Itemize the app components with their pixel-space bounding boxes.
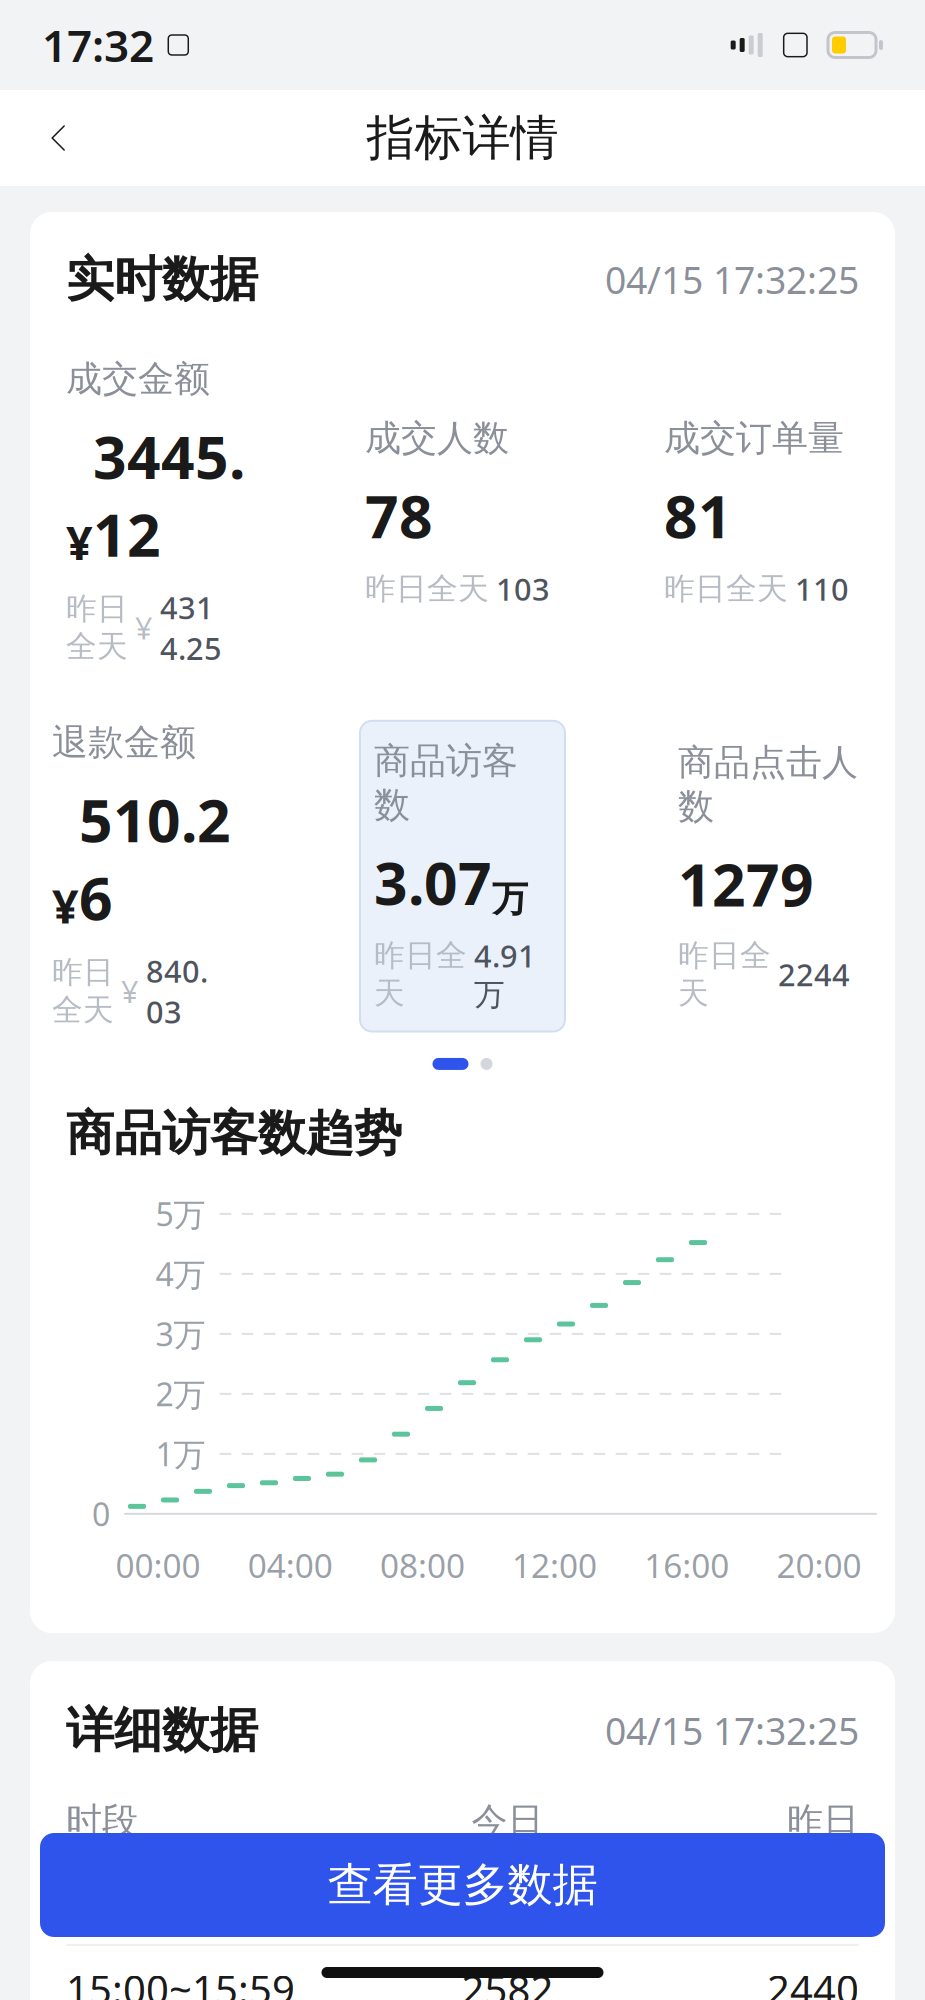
- staticText: 2752: [461, 1874, 553, 1928]
- staticText: 4314.25: [160, 587, 222, 668]
- staticText: 4.91万: [474, 935, 536, 1014]
- staticText: 20:00: [776, 1543, 861, 1587]
- staticText: 0: [92, 1493, 110, 1535]
- staticText: 退款金额: [52, 720, 196, 765]
- staticText: 17:32: [42, 16, 154, 74]
- staticText: 3445.12: [93, 417, 245, 573]
- staticText: 2244: [778, 954, 850, 995]
- staticText: 查看更多数据: [327, 1857, 597, 1913]
- staticText: 2万: [155, 1373, 205, 1415]
- staticText: 110: [795, 568, 849, 609]
- staticText: 16:00: [644, 1543, 729, 1587]
- staticText: 1万: [155, 1433, 205, 1475]
- staticText: 昨日全天: [66, 590, 128, 665]
- staticText: 00:00: [115, 1543, 200, 1587]
- staticText: 详细数据: [66, 1701, 258, 1760]
- staticText: 840.03: [146, 950, 208, 1032]
- staticText: 昨日全天: [52, 953, 114, 1029]
- staticText: 昨日全天: [365, 570, 489, 608]
- staticText: 04/15 17:32:25: [605, 255, 859, 304]
- staticText: ¥: [66, 511, 93, 573]
- staticText: 时段: [66, 1799, 138, 1843]
- staticText: 实时数据: [66, 250, 258, 309]
- staticText: 12:00: [512, 1543, 597, 1587]
- staticText: 1279: [678, 845, 814, 923]
- staticText: 今日: [471, 1799, 543, 1843]
- staticText: ¥: [135, 607, 153, 648]
- staticText: 08:00: [380, 1543, 465, 1587]
- staticText: 成交金额: [66, 357, 210, 401]
- staticText: 昨日全天: [374, 937, 467, 1012]
- staticText: 昨日: [787, 1799, 859, 1843]
- staticText: 3.07: [374, 843, 492, 921]
- staticText: 15:00~15:59: [66, 1962, 295, 2000]
- staticText: 昨日全天: [678, 937, 771, 1012]
- staticText: 成交人数: [365, 416, 509, 460]
- staticText: ¥: [52, 874, 79, 936]
- staticText: 商品访客数: [374, 739, 518, 827]
- staticText: 2440: [767, 1962, 859, 2000]
- button[interactable]: Back: [24, 103, 94, 173]
- staticText: 2582: [461, 1962, 553, 2000]
- staticText: 04/15 17:32:25: [605, 1706, 859, 1755]
- staticText: ¥: [121, 971, 139, 1011]
- staticText: 81: [664, 476, 732, 554]
- staticText: 万: [492, 877, 528, 921]
- staticText: 指标详情: [366, 108, 558, 167]
- staticText: 3万: [155, 1313, 205, 1355]
- staticText: 510.26: [79, 781, 231, 936]
- button[interactable]: 查看更多数据: [40, 1833, 885, 1937]
- staticText: 昨日全天: [664, 570, 788, 608]
- staticText: 04:00: [248, 1543, 333, 1587]
- staticText: 78: [365, 476, 433, 554]
- staticText: 商品点击人数: [678, 740, 858, 829]
- staticText: 5万: [155, 1193, 205, 1235]
- staticText: 商品访客数趋势: [66, 1104, 402, 1163]
- staticText: 103: [496, 568, 550, 609]
- staticText: 4万: [155, 1253, 205, 1295]
- staticText: 成交订单量: [664, 416, 844, 460]
